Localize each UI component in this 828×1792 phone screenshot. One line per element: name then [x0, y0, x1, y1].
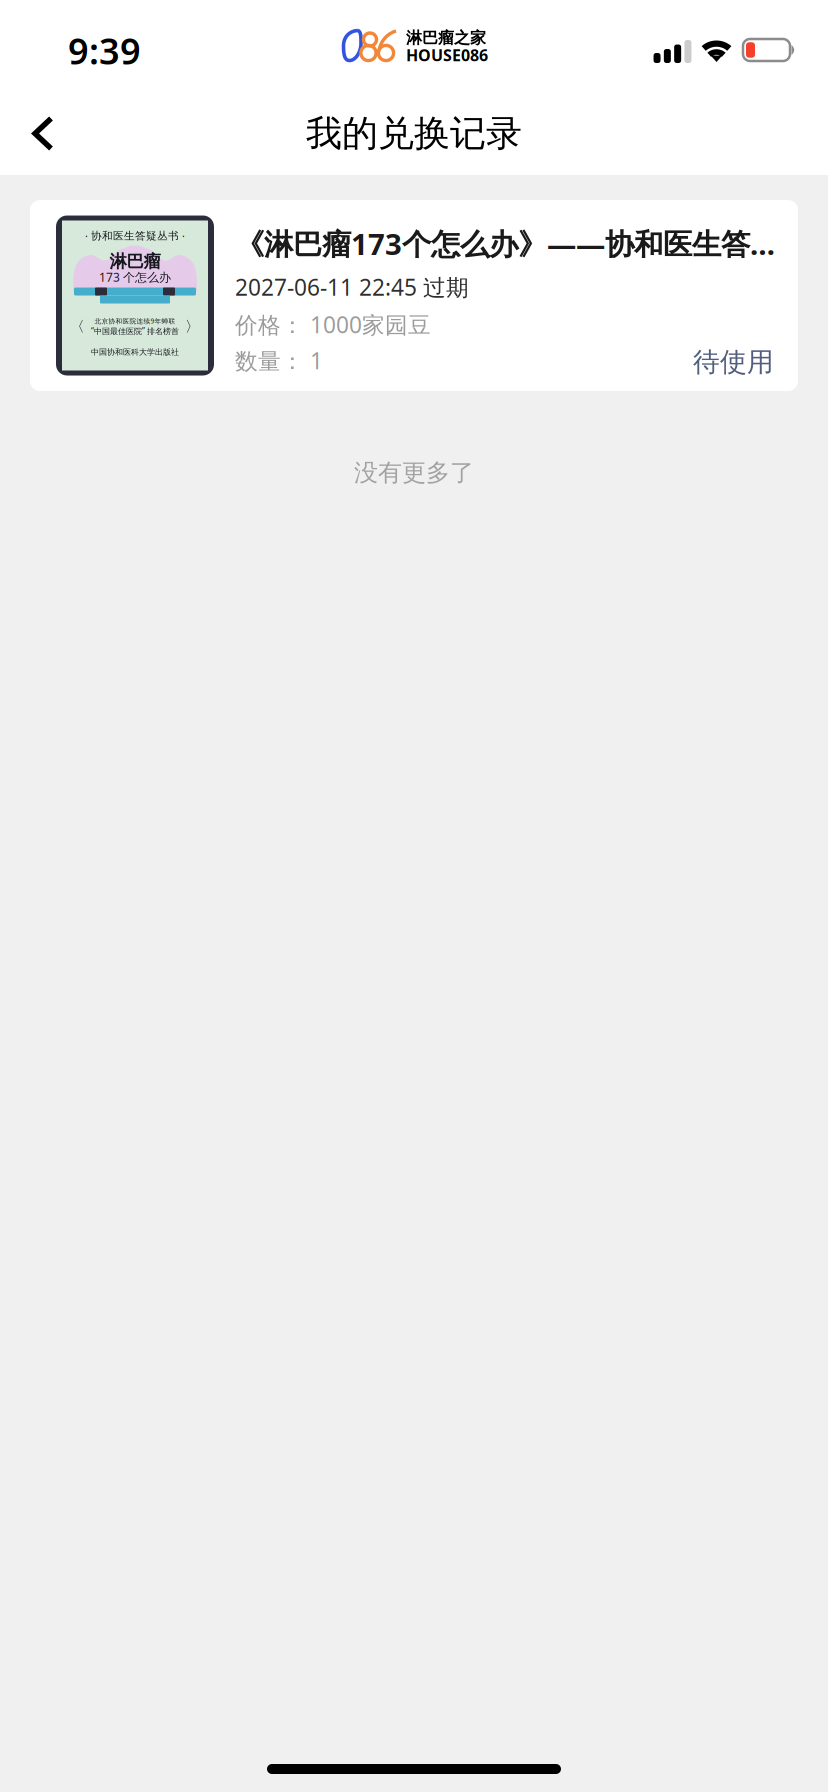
staticText: 没有更多了: [354, 458, 474, 487]
staticText: 北京协和医院连续9年蝉联: [94, 317, 175, 325]
staticText: 中国协和医科大学出版社: [91, 347, 179, 357]
button[interactable]: 返回: [0, 92, 86, 175]
staticText: 〈: [70, 317, 85, 335]
staticText: 《淋巴瘤173个怎么办》——协和医生答…: [235, 224, 775, 263]
staticText: 〉: [185, 317, 200, 335]
staticText: HOUSE086: [406, 44, 488, 66]
staticText: · 协和医生答疑丛书 ·: [85, 228, 185, 243]
staticText: “中国最佳医院” 排名榜首: [91, 326, 179, 336]
staticText: 我的兑换记录: [306, 111, 522, 156]
staticText: 待使用: [693, 346, 774, 378]
staticText: 价格： 1000家园豆: [235, 309, 431, 339]
staticText: 9:39: [68, 27, 141, 74]
staticText: 173 个怎么办: [99, 269, 171, 285]
staticText: 2027-06-11 22:45 过期: [235, 272, 469, 302]
button[interactable]: · 协和医生答疑丛书 ·: [30, 200, 798, 391]
staticText: 淋巴瘤之家: [406, 28, 486, 48]
staticText: 淋巴瘤: [109, 251, 160, 272]
staticText: 数量： 1: [235, 345, 323, 375]
